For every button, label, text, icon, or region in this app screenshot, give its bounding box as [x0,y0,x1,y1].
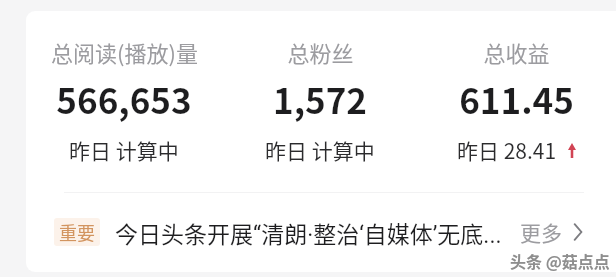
staticText: 611.45 [459,73,574,124]
staticText: 昨日 计算中 [69,135,179,165]
staticText: 今日头条开展“清朗·整治‘自媒体’无底... [115,216,502,249]
staticText: 更多 [520,217,562,247]
staticText: 566,653 [56,73,192,124]
staticText: 重要 [59,219,95,245]
staticText: 昨日 计算中 [265,135,375,165]
button[interactable]: 总粉丝 [222,11,418,165]
staticText: 总收益 [483,36,550,68]
staticText: 总粉丝 [287,36,354,68]
staticText: 头条 @菇点点 [510,249,610,272]
button[interactable]: 总阅读(播放)量 [26,11,222,165]
button[interactable]: 重要 [26,201,616,263]
button[interactable]: 总收益 [418,11,614,165]
other: More [572,222,584,242]
staticText: 昨日 28.41 [457,135,557,165]
staticText: 总阅读(播放)量 [51,36,198,68]
staticText: 1,572 [273,73,367,124]
